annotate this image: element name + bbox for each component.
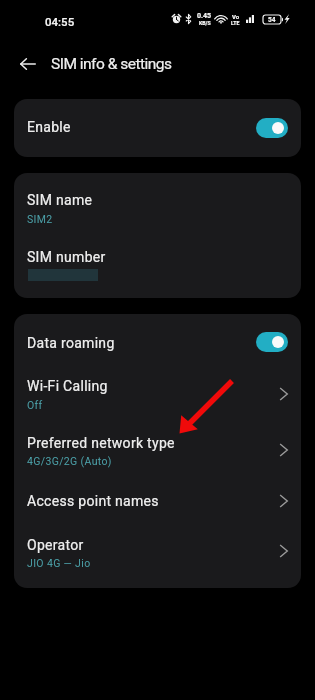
staticText: 54: [268, 16, 276, 24]
staticText: Operator: [27, 537, 84, 553]
button[interactable]: Toggle on: [256, 332, 288, 352]
staticText: Data roaming: [27, 335, 115, 351]
staticText: SIM name: [27, 192, 93, 208]
staticText: Off: [27, 399, 43, 411]
button[interactable]: SIM number: [14, 233, 301, 298]
staticText: SIM info & settings: [51, 55, 172, 73]
staticText: Vo: [232, 13, 240, 20]
button[interactable]: SIM name: [14, 173, 301, 233]
button[interactable]: Preferred network type: [14, 417, 301, 475]
button[interactable]: Operator: [14, 524, 301, 588]
staticText: Access point names: [27, 493, 159, 509]
button[interactable]: Enable: [14, 99, 301, 157]
staticText: LTE: [231, 20, 240, 26]
staticText: JIO 4G — Jio: [27, 557, 91, 569]
staticText: 0.45: [197, 12, 212, 20]
button[interactable]: Navigate up: [11, 47, 45, 81]
staticText: SIM2: [27, 213, 53, 225]
button[interactable]: Access point names: [14, 475, 301, 524]
staticText: 4G/3G/2G (Auto): [27, 455, 112, 467]
staticText: Preferred network type: [27, 435, 175, 451]
staticText: KB/S: [199, 20, 211, 26]
button[interactable]: Data roaming: [14, 314, 301, 359]
staticText: 04:55: [45, 15, 75, 28]
staticText: SIM number: [27, 249, 106, 265]
staticText: Enable: [27, 119, 71, 135]
staticText: Wi-Fi Calling: [27, 378, 108, 394]
button[interactable]: Toggle on: [256, 118, 288, 138]
button[interactable]: Wi-Fi Calling: [14, 359, 301, 417]
